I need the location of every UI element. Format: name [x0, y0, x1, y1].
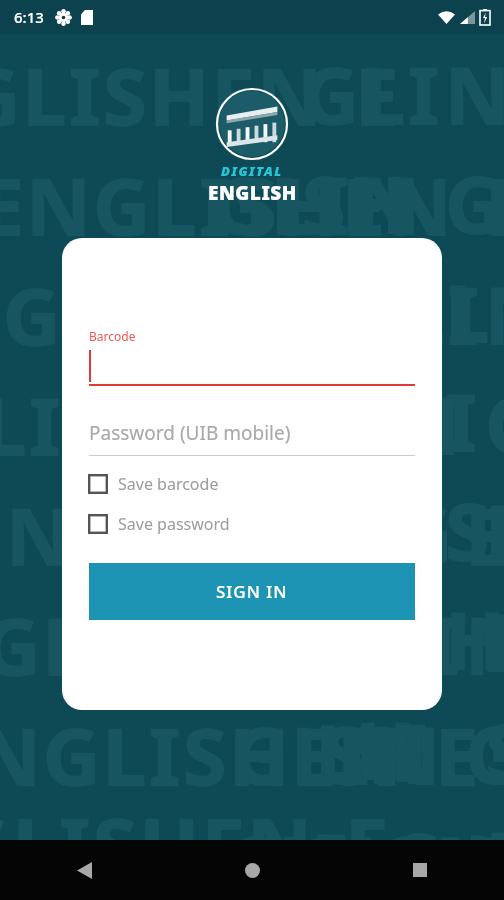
- staticText: ENGLISH: [0, 150, 341, 259]
- button[interactable]: Back: [0, 840, 168, 900]
- staticText: ENGLISH: [171, 370, 314, 697]
- staticText: 6:13: [14, 7, 44, 27]
- staticText: DIGITAL: [221, 162, 283, 180]
- staticText: ENGLISH: [208, 180, 297, 206]
- staticText: ENGLISH: [231, 590, 374, 900]
- staticText: ENGLISH: [321, 480, 464, 807]
- staticText: ENGLISH: [0, 700, 291, 809]
- button[interactable]: SIGN IN: [89, 563, 415, 620]
- staticText: SIGN IN: [216, 580, 288, 603]
- staticText: ENGLISH: [0, 370, 171, 479]
- staticText: ENGLISH: [0, 40, 211, 149]
- staticText: Barcode: [89, 328, 136, 344]
- staticText: ENGLISH: [0, 260, 251, 369]
- staticText: ENGLISH: [201, 790, 344, 900]
- staticText: ENGLISH: [301, 0, 444, 257]
- staticText: Save barcode: [118, 473, 219, 495]
- staticText: Password (UIB mobile): [89, 420, 291, 446]
- staticText: ENGLISH: [251, 260, 394, 587]
- button[interactable]: Password (UIB mobile): [89, 420, 415, 456]
- staticText: ENGLISH: [341, 150, 484, 477]
- staticText: ENGLISH: [291, 700, 434, 900]
- button[interactable]: Home: [168, 840, 336, 900]
- staticText: ENGLISH: [211, 40, 354, 367]
- button[interactable]: [89, 346, 415, 386]
- staticText: ENGLISH: [0, 480, 321, 589]
- button[interactable]: Save password: [88, 510, 230, 538]
- button[interactable]: Recent apps: [336, 840, 504, 900]
- staticText: ENGLISH: [0, 0, 301, 39]
- staticText: ENGLISH: [0, 790, 201, 899]
- button[interactable]: Save barcode: [88, 470, 219, 498]
- staticText: ENGLISH: [0, 590, 231, 699]
- staticText: Save password: [118, 513, 230, 535]
